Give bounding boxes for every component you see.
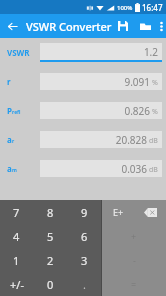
staticText: 3	[81, 253, 88, 268]
staticText: 0.826	[124, 104, 150, 118]
staticText: 8	[47, 205, 54, 220]
staticText: 1.2	[143, 45, 158, 59]
button[interactable]: +/-	[0, 272, 33, 296]
button[interactable]: More options	[156, 17, 166, 35]
staticText: 9	[81, 205, 88, 220]
button[interactable]: 9	[67, 200, 101, 224]
staticText: .	[83, 277, 86, 292]
staticText: %	[152, 78, 158, 88]
staticText: VSWR	[7, 47, 30, 58]
button[interactable]: VSWR	[0, 38, 166, 67]
staticText: a	[7, 163, 12, 174]
staticText: 1	[13, 253, 20, 268]
staticText: m	[12, 167, 17, 174]
staticText: dB	[149, 136, 158, 146]
staticText: 6	[81, 229, 88, 244]
staticText: E+	[113, 206, 124, 218]
staticText: a	[7, 134, 12, 145]
button[interactable]: 1	[0, 248, 33, 272]
staticText: 5	[47, 229, 54, 244]
button[interactable]: Open	[134, 15, 156, 37]
staticText: refl	[12, 109, 21, 116]
button[interactable]: 4	[0, 224, 33, 248]
staticText: 16:47	[142, 2, 163, 13]
staticText: 2	[47, 253, 54, 268]
staticText: r	[7, 76, 11, 87]
button[interactable]: E+	[102, 200, 134, 224]
button[interactable]: a	[0, 125, 166, 154]
staticText: 4	[13, 229, 20, 244]
staticText: 100%	[117, 4, 133, 12]
staticText: +	[131, 230, 137, 242]
staticText: 20.828	[115, 133, 147, 147]
staticText: VSWR Converter	[26, 19, 112, 34]
button[interactable]: Back	[0, 14, 24, 38]
button[interactable]: 3	[67, 248, 101, 272]
button[interactable]: 8	[33, 200, 67, 224]
button[interactable]: a	[0, 154, 166, 183]
staticText: 7	[13, 205, 20, 220]
staticText: 0	[47, 277, 54, 292]
button[interactable]: r	[0, 67, 166, 96]
button[interactable]: 5	[33, 224, 67, 248]
button[interactable]: 0	[33, 272, 67, 296]
button[interactable]: P	[0, 96, 166, 125]
staticText: P	[7, 105, 12, 116]
staticText: +/-	[10, 277, 24, 292]
staticText: =	[131, 278, 137, 290]
button[interactable]: Backspace	[134, 200, 166, 224]
staticText: 0.036	[121, 162, 147, 176]
button[interactable]: 2	[33, 248, 67, 272]
button[interactable]: Save	[112, 15, 134, 37]
staticText: dB	[149, 165, 158, 175]
staticText: r	[12, 138, 15, 145]
button[interactable]: 7	[0, 200, 33, 224]
button[interactable]: .	[67, 272, 101, 296]
staticText: 9.091	[124, 75, 150, 89]
staticText: %	[152, 107, 158, 117]
button[interactable]: 6	[67, 224, 101, 248]
